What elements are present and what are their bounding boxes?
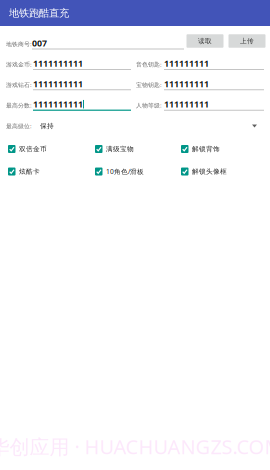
- button[interactable]: 游戏钻石:: [0, 0, 270, 470]
- button[interactable]: 最高分数:: [0, 0, 270, 470]
- button[interactable]: 双倍金币: [8, 142, 88, 155]
- staticText: 游戏钻石:: [6, 81, 32, 89]
- staticText: 最高分数:: [6, 101, 32, 109]
- staticText: 解锁背饰: [192, 145, 220, 153]
- staticText: 1111111111: [33, 78, 83, 90]
- button[interactable]: 音色钥匙:: [0, 0, 270, 470]
- staticText: 保持: [40, 122, 54, 130]
- button[interactable]: 读取: [186, 34, 223, 48]
- button[interactable]: 宝物钥匙:: [0, 0, 270, 470]
- staticText: 007: [32, 37, 47, 49]
- staticText: 满级宝物: [106, 145, 134, 153]
- staticText: 读取: [198, 37, 212, 45]
- staticText: 炫酷卡: [19, 167, 40, 176]
- staticText: 华创应用 · HUACHUANGZS.COM: [0, 433, 270, 460]
- staticText: 人物等级:: [136, 101, 162, 109]
- button[interactable]: 游戏金币:: [0, 0, 270, 470]
- staticText: 双倍金币: [19, 145, 47, 153]
- staticText: 地铁商号:: [6, 40, 32, 48]
- button[interactable]: 人物等级:: [0, 0, 270, 470]
- staticText: 音色钥匙:: [136, 60, 162, 68]
- staticText: 最高级位:: [6, 122, 32, 130]
- staticText: 游戏金币:: [6, 60, 32, 68]
- button[interactable]: 上传: [228, 34, 265, 48]
- button[interactable]: 解锁背饰: [181, 142, 261, 155]
- staticText: 解锁头像框: [192, 167, 227, 176]
- staticText: 地铁跑酷直充: [9, 6, 69, 19]
- staticText: 宝物钥匙:: [136, 81, 162, 89]
- button[interactable]: 10角色/滑板: [95, 165, 175, 178]
- button[interactable]: 保持: [34, 117, 270, 135]
- staticText: 1111111111: [33, 57, 83, 69]
- staticText: 111111111: [164, 57, 209, 69]
- button[interactable]: 满级宝物: [95, 142, 175, 155]
- staticText: 111111111: [164, 78, 209, 90]
- staticText: 1111111111: [33, 98, 83, 110]
- staticText: 10角色/滑板: [106, 167, 144, 176]
- button[interactable]: 解锁头像框: [181, 165, 261, 178]
- staticText: 111111111: [164, 98, 209, 110]
- staticText: 上传: [240, 37, 254, 45]
- button[interactable]: 炫酷卡: [8, 165, 88, 178]
- button[interactable]: 地铁商号:: [0, 0, 270, 470]
